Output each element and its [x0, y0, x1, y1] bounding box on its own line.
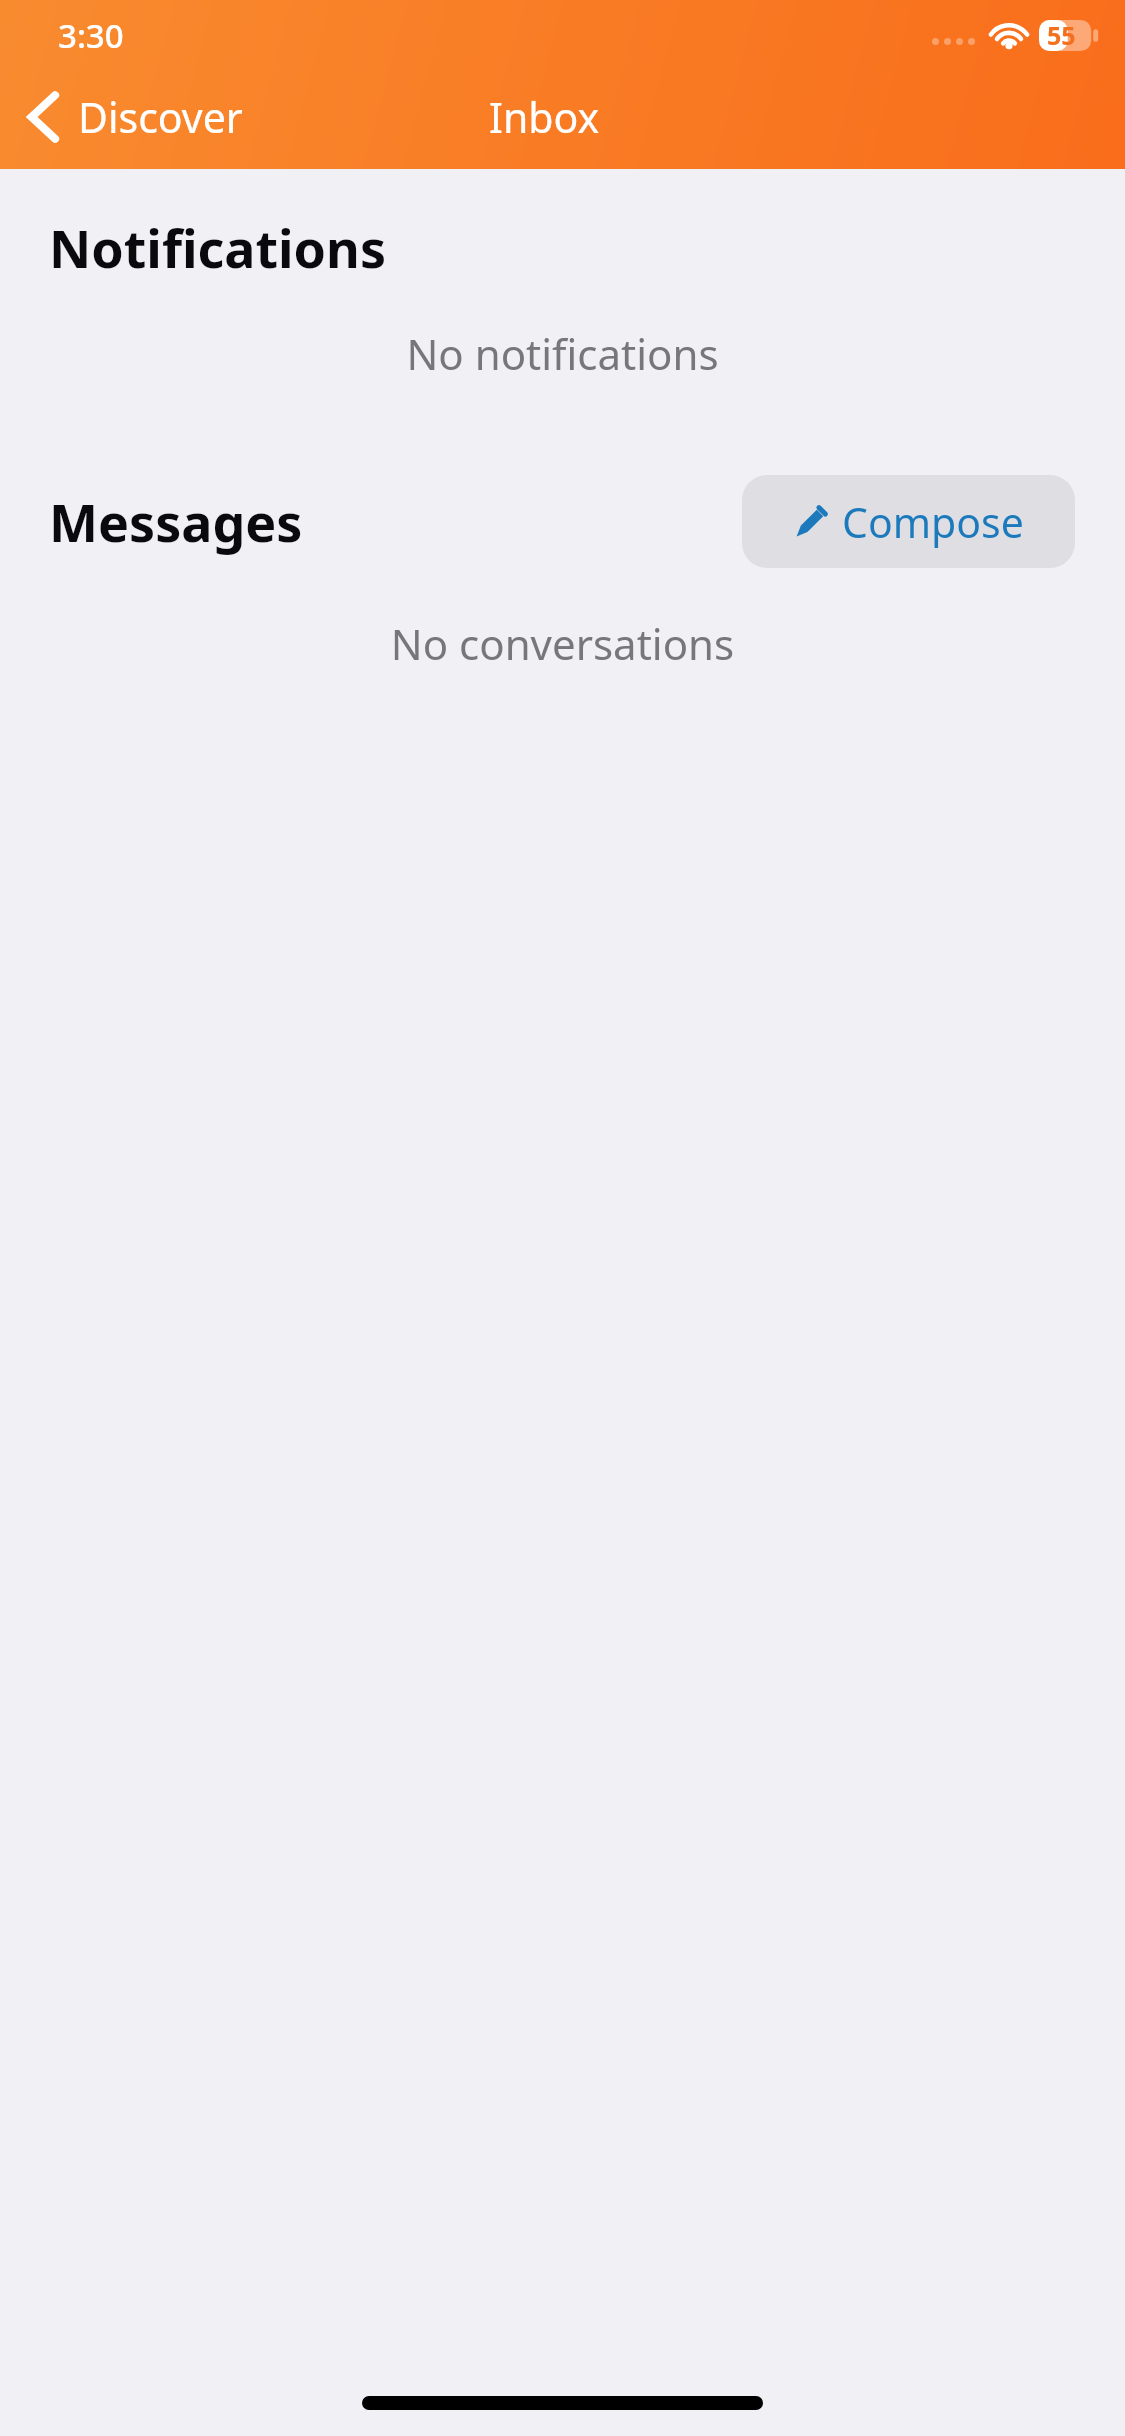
staticText: 3:30	[58, 13, 124, 58]
staticText: Discover	[78, 89, 243, 145]
staticText: Inbox	[489, 89, 600, 145]
staticText: Messages	[49, 486, 303, 557]
button[interactable]: Discover	[12, 79, 259, 155]
staticText: Notifications	[49, 212, 387, 283]
staticText: No conversations	[0, 615, 1125, 672]
other: Compose	[793, 504, 829, 540]
button[interactable]: Compose	[742, 475, 1075, 568]
staticText: 55	[1047, 18, 1076, 52]
staticText: No notifications	[0, 325, 1125, 382]
staticText: Compose	[842, 494, 1024, 550]
